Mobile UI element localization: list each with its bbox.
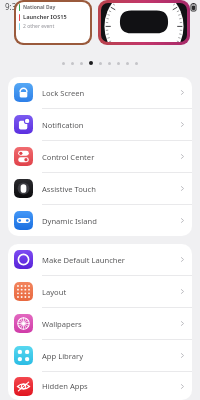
staticText: Notification (42, 120, 179, 130)
staticText: Hidden Apps (42, 381, 179, 391)
button[interactable]: Dynamic Island (8, 205, 192, 236)
staticText: Dynamic Island (42, 216, 179, 226)
button[interactable]: Assistive Touch (8, 173, 192, 204)
button[interactable]: Notification (8, 109, 192, 140)
button[interactable]: Hidden Apps (8, 372, 192, 400)
staticText: Wallpapers (42, 319, 179, 329)
staticText: Assistive Touch (42, 184, 179, 194)
staticText: Make Default Launcher (42, 255, 179, 265)
button[interactable]: App Library (8, 340, 192, 371)
button[interactable]: Layout (8, 276, 192, 307)
staticText: 9:30 (5, 1, 21, 12)
button[interactable]: Lock Screen (8, 77, 192, 108)
staticText: 2 other event (23, 23, 55, 30)
button[interactable]: Calendar widget (14, 0, 92, 45)
staticText: Control Center (42, 152, 179, 162)
button[interactable]: Make Default Launcher (8, 244, 192, 275)
button[interactable]: Control Center (8, 141, 192, 172)
button[interactable]: Clock widget (98, 0, 190, 45)
button[interactable]: Wallpapers (8, 308, 192, 339)
staticText: Launcher IOS15 (23, 13, 67, 21)
staticText: National Day (23, 4, 56, 11)
staticText: App Library (42, 351, 179, 361)
staticText: Layout (42, 287, 179, 297)
staticText: Lock Screen (42, 88, 179, 98)
